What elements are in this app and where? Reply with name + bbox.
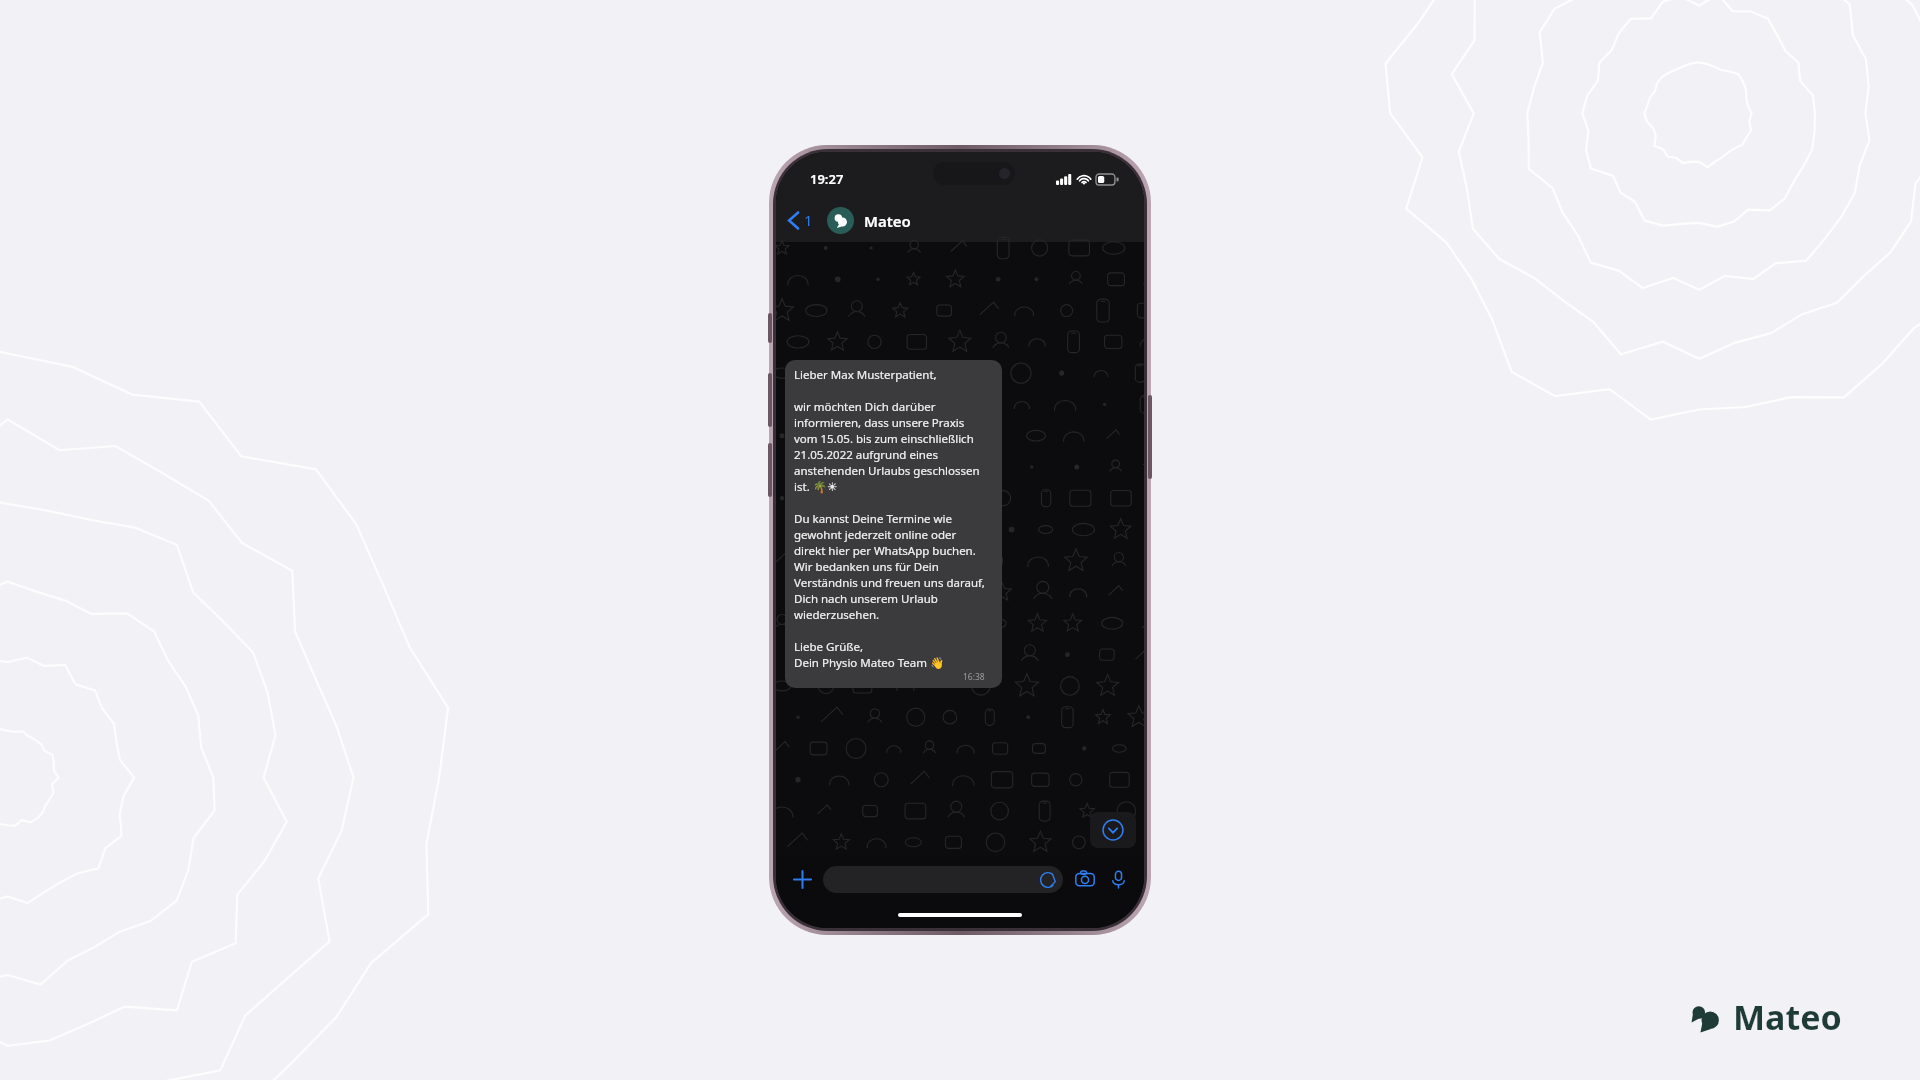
button[interactable]: Stickers (823, 866, 1063, 893)
staticText: Mateo (1733, 994, 1842, 1040)
staticText: Lieber Max Musterpatient, wir möchten Di… (794, 367, 985, 671)
button[interactable]: Camera (1070, 864, 1100, 894)
button[interactable]: Lieber Max Musterpatient, wir möchten Di… (785, 360, 1002, 688)
button[interactable]: Mateo (1691, 994, 1842, 1040)
button[interactable]: Voice message (1103, 864, 1133, 894)
staticText: 16:38 (963, 671, 985, 683)
staticText: Mateo (864, 211, 911, 231)
staticText: 1 (804, 210, 813, 230)
button[interactable]: Back (776, 206, 819, 234)
button[interactable]: Stickers (1038, 870, 1058, 890)
button[interactable]: Mateo (827, 207, 911, 234)
staticText: 19:27 (810, 170, 844, 188)
button[interactable]: Scroll to bottom (1090, 812, 1136, 848)
button[interactable]: Attach (787, 864, 817, 894)
